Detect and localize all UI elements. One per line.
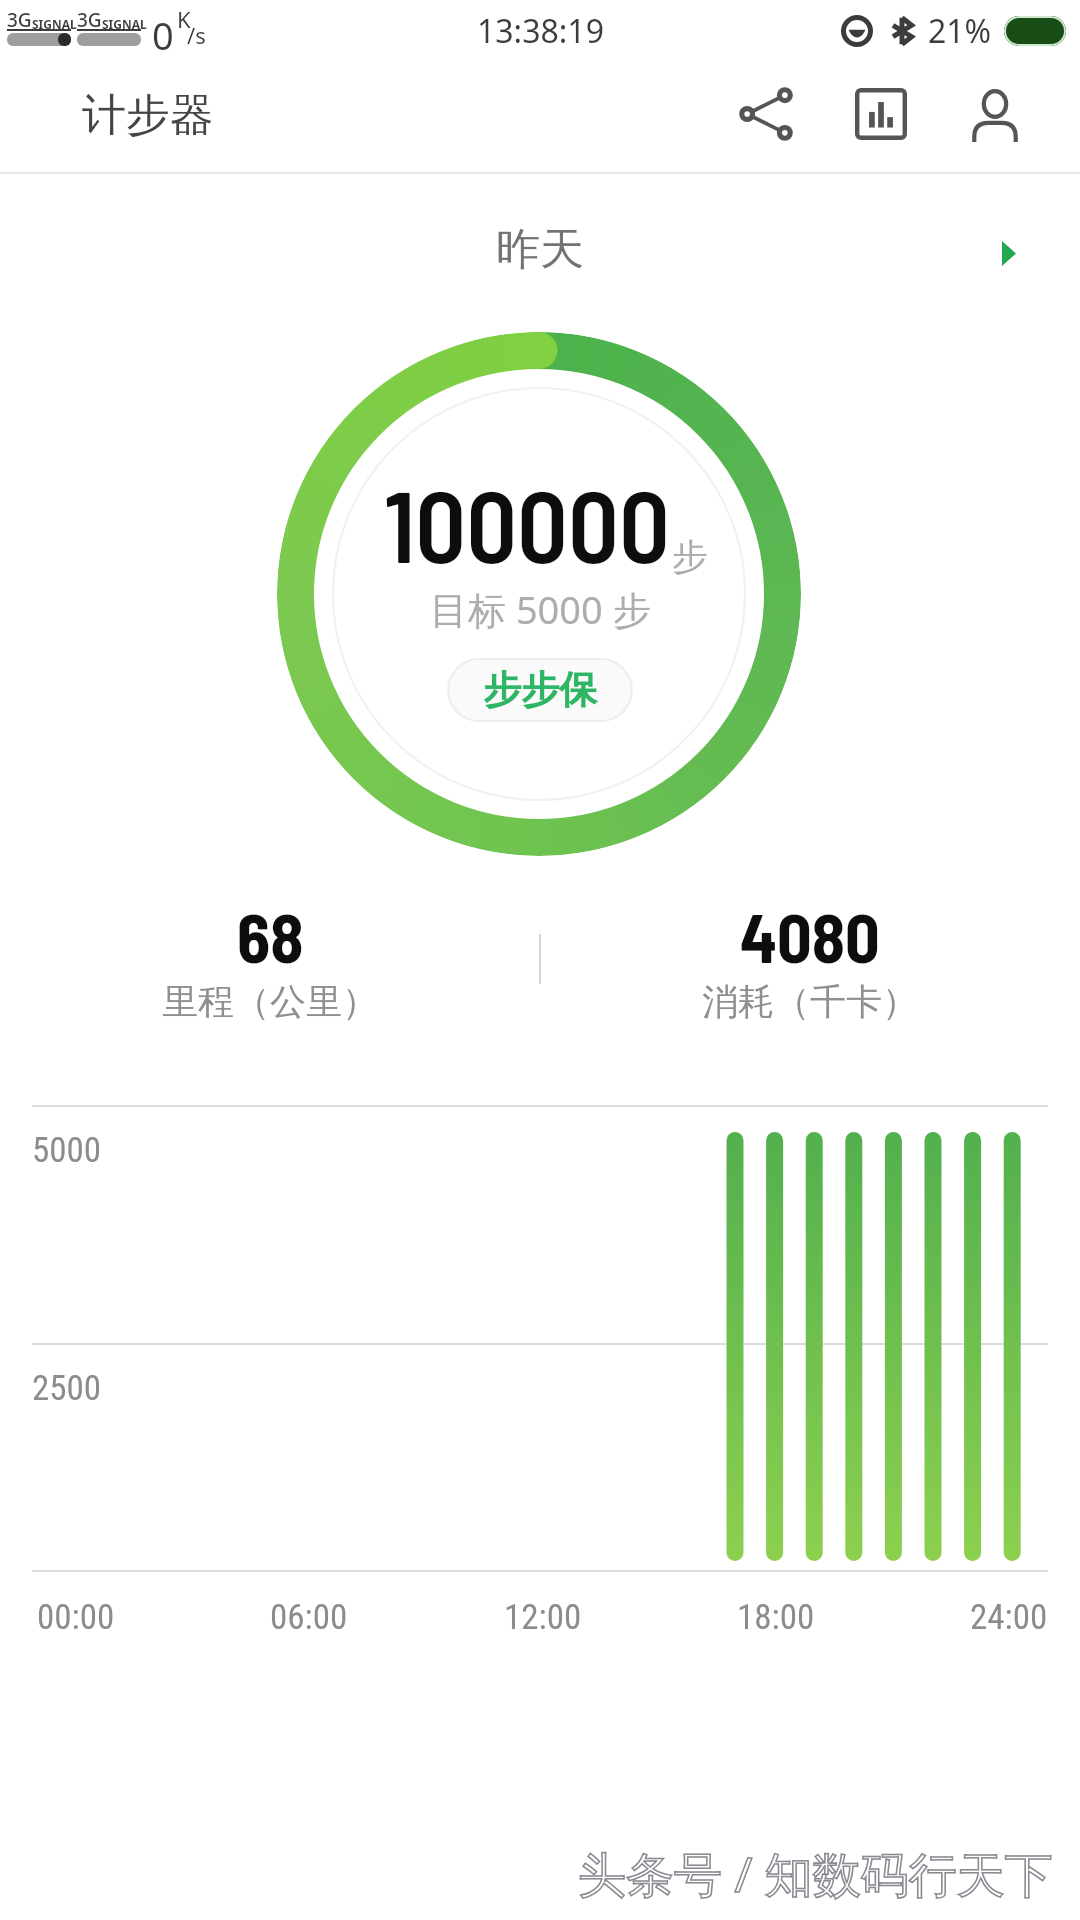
button[interactable]: 步步保 bbox=[447, 658, 633, 722]
staticText: 消耗（千卡） bbox=[702, 979, 918, 1024]
staticText: 24:00 bbox=[970, 1597, 1048, 1638]
staticText: 12:00 bbox=[504, 1597, 582, 1638]
staticText: SIGNAL bbox=[102, 16, 147, 32]
staticText: 100000 bbox=[384, 463, 670, 583]
staticText: K bbox=[177, 4, 191, 34]
staticText: 计步器 bbox=[82, 88, 214, 143]
staticText: 步 bbox=[672, 534, 708, 579]
button[interactable]: Profile bbox=[943, 62, 1047, 166]
staticText: 里程（公里） bbox=[162, 979, 378, 1024]
staticText: 13:38:19 bbox=[477, 9, 604, 53]
staticText: 3G bbox=[7, 7, 32, 33]
staticText: /s bbox=[187, 20, 206, 50]
staticText: 步步保 bbox=[483, 666, 597, 714]
staticText: 0 bbox=[152, 9, 174, 61]
button[interactable]: Statistics bbox=[829, 62, 933, 166]
staticText: 3G bbox=[77, 7, 102, 33]
staticText: 21% bbox=[928, 9, 992, 53]
staticText: 68 bbox=[237, 895, 304, 977]
button[interactable]: Step progress ring bbox=[277, 332, 801, 856]
button[interactable]: Next day bbox=[982, 226, 1036, 280]
staticText: 5000 bbox=[32, 1130, 102, 1171]
staticText: 06:00 bbox=[270, 1597, 348, 1638]
staticText: 目标 5000 步 bbox=[430, 583, 651, 635]
staticText: 昨天 bbox=[496, 222, 584, 277]
button[interactable]: 4080 bbox=[540, 895, 1080, 1024]
staticText: 2500 bbox=[32, 1368, 102, 1409]
staticText: 00:00 bbox=[37, 1597, 115, 1638]
staticText: 4080 bbox=[740, 895, 880, 977]
button[interactable]: Share bbox=[714, 62, 818, 166]
staticText: 头条号 / 知数码行天下 bbox=[578, 1841, 1053, 1907]
staticText: SIGNAL bbox=[32, 16, 77, 32]
button[interactable]: 68 bbox=[0, 895, 540, 1024]
staticText: 18:00 bbox=[737, 1597, 815, 1638]
